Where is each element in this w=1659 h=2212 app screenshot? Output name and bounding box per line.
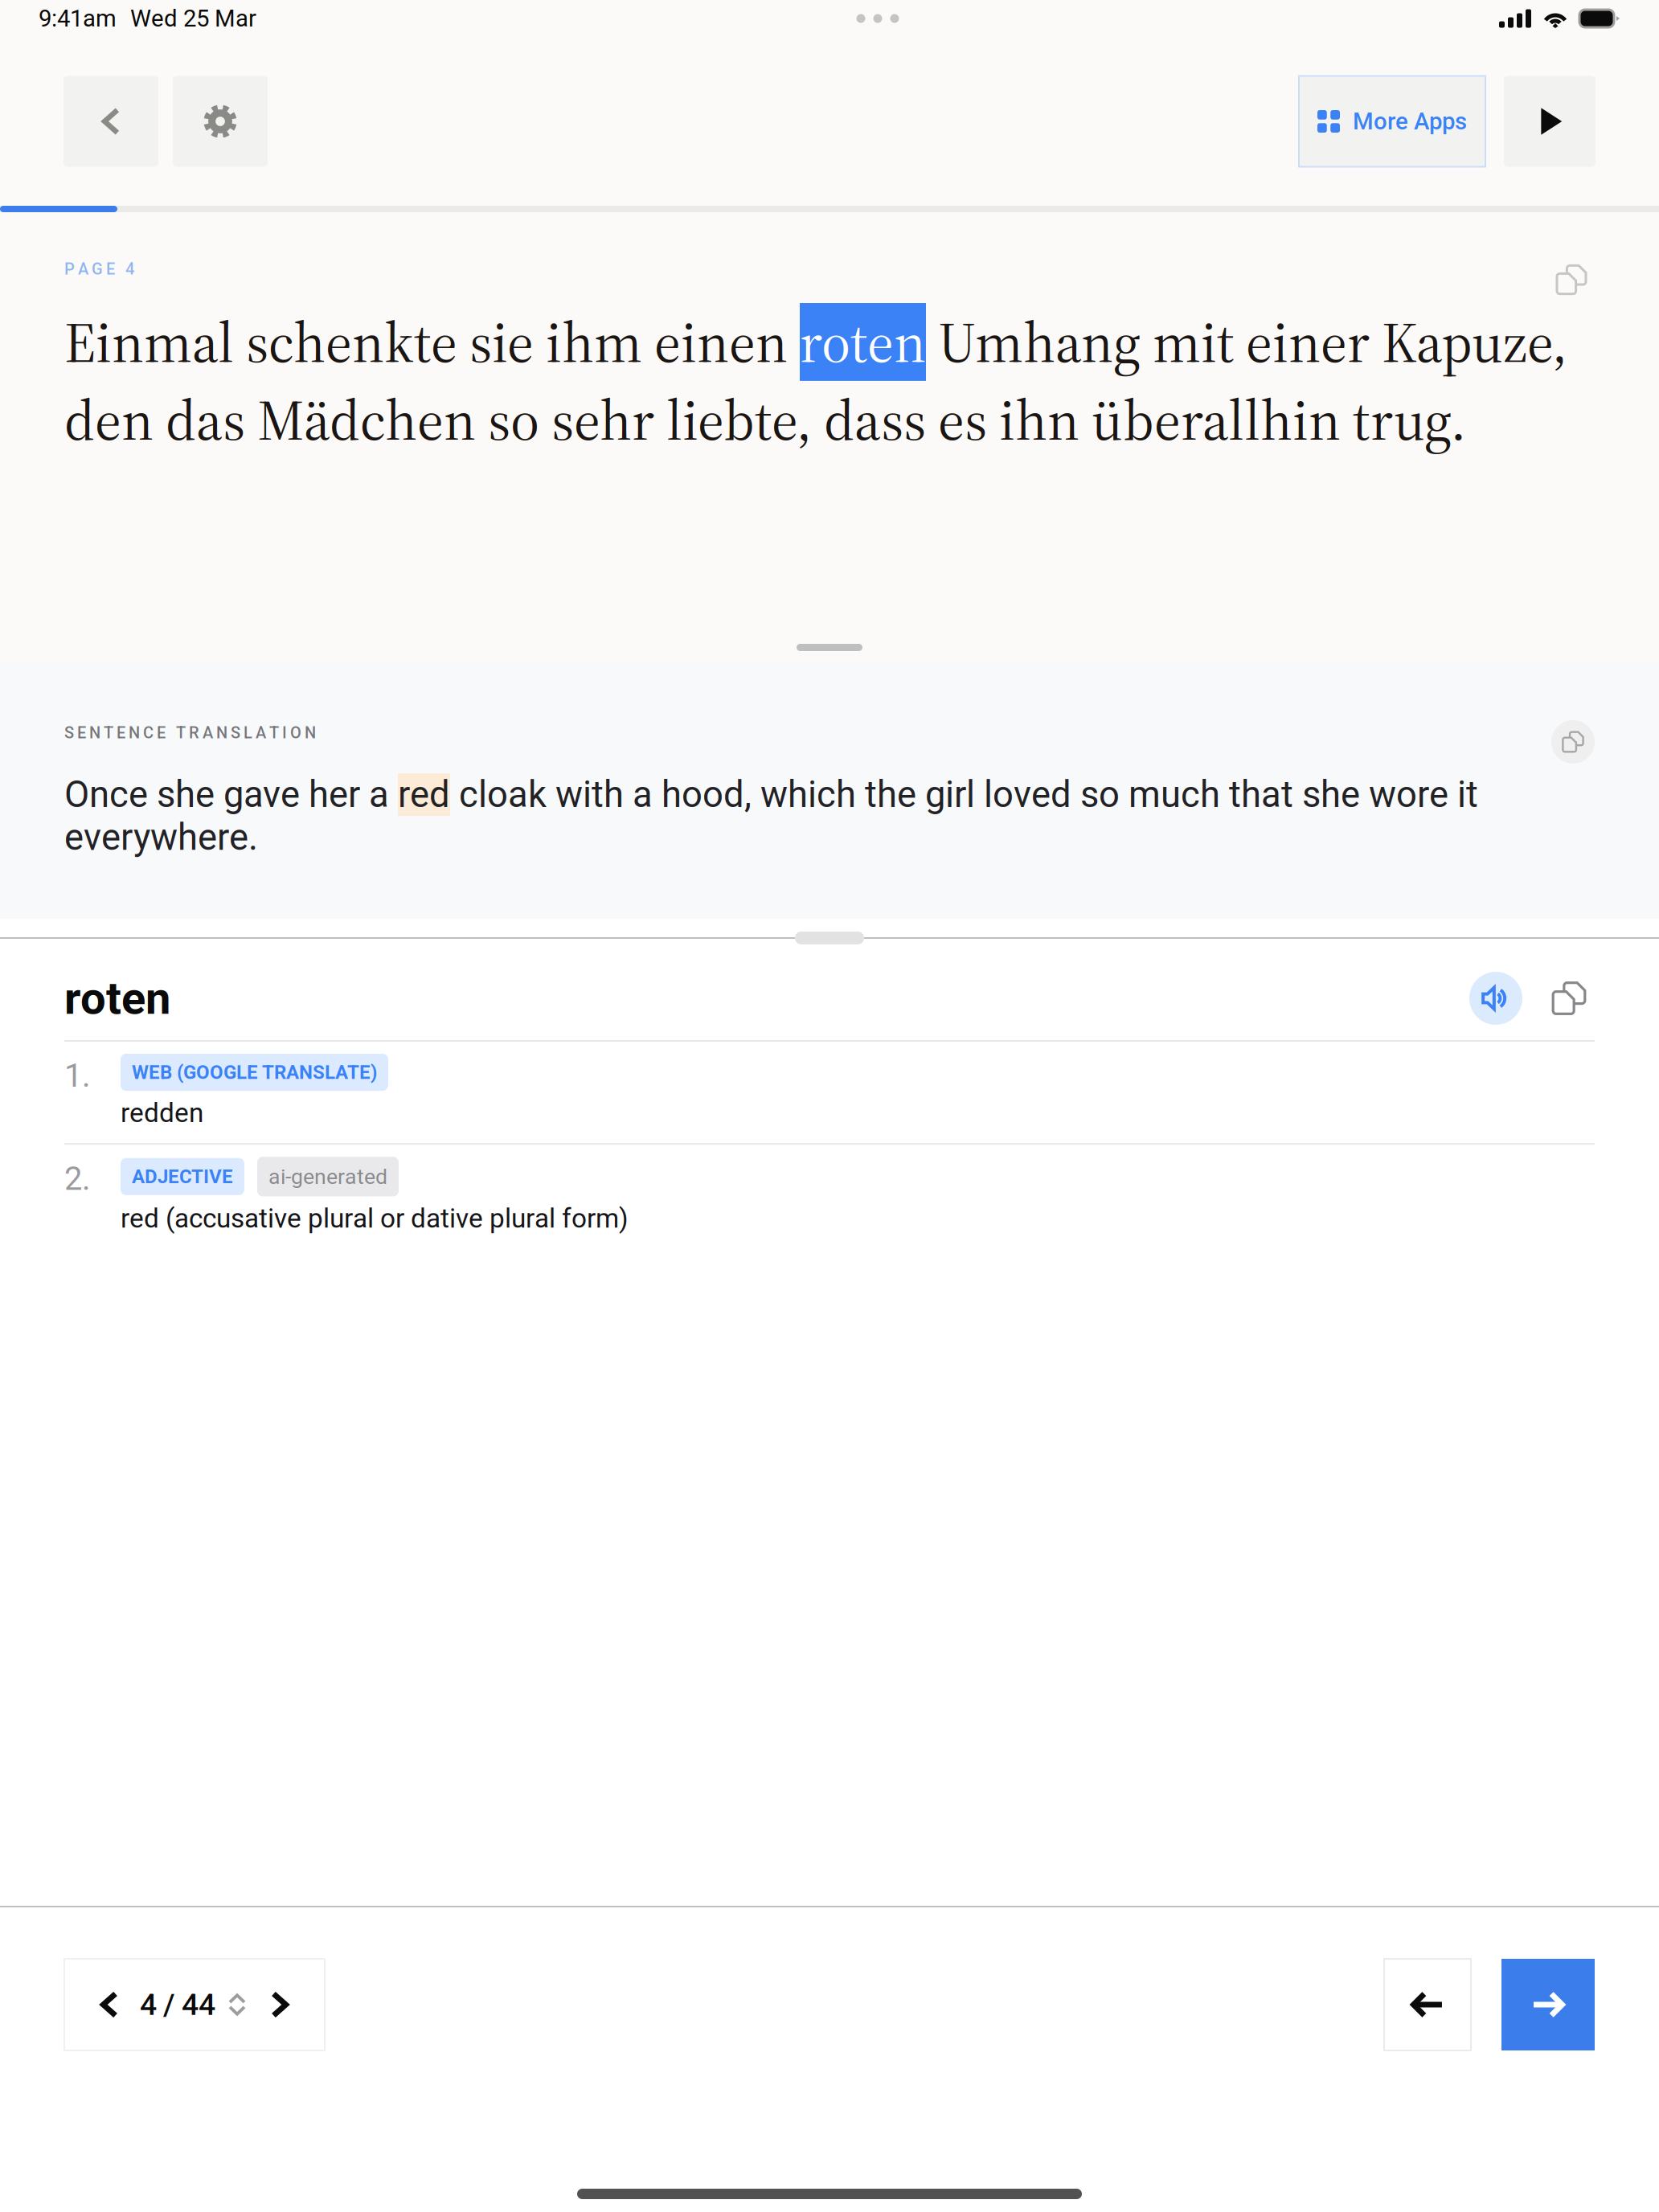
button[interactable]: Next page — [249, 1960, 310, 2050]
button[interactable]: Back — [63, 76, 158, 167]
staticText: 1. — [64, 1057, 91, 1095]
button[interactable]: More Apps — [1299, 76, 1485, 167]
staticText: Einmal schenkte sie ihm einen roten Umha… — [64, 303, 1567, 459]
staticText: red (accusative plural or dative plural … — [121, 1203, 629, 1234]
staticText: 9:41am — [39, 5, 117, 32]
button[interactable]: Previous page — [79, 1960, 140, 2050]
staticText: ADJECTIVE — [132, 1165, 233, 1188]
staticText: roten — [64, 972, 170, 1025]
button[interactable]: Settings — [173, 76, 268, 167]
staticText: redden — [121, 1097, 203, 1129]
staticText: More Apps — [1353, 108, 1467, 135]
staticText: Wed 25 Mar — [130, 5, 256, 32]
button[interactable]: Pronounce word — [1469, 972, 1522, 1025]
button[interactable]: Copy word — [1543, 973, 1595, 1024]
button[interactable]: Previous sentence — [1384, 1959, 1471, 2050]
button[interactable]: Next sentence — [1501, 1959, 1595, 2050]
staticText: ai-generated — [268, 1164, 387, 1189]
staticText: WEB (GOOGLE TRANSLATE) — [132, 1061, 377, 1084]
button[interactable]: Copy translation — [1551, 720, 1595, 764]
staticText: 2. — [64, 1160, 91, 1198]
staticText: Once she gave her a red cloak with a hoo… — [64, 773, 1478, 859]
button[interactable]: Copy sentence — [1548, 256, 1595, 303]
button[interactable]: Play — [1504, 76, 1596, 167]
staticText: 4 / 44 — [140, 1987, 215, 2022]
staticText: P A G E 4 — [64, 260, 134, 278]
staticText: S E N T E N C E T R A N S L A T I O N — [64, 723, 316, 742]
